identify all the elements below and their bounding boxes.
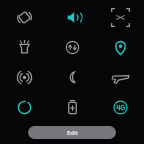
- button[interactable]: WLAN Hotspot: [0, 63, 48, 93]
- button[interactable]: Auto-rotate: [0, 3, 48, 33]
- button[interactable]: Edit: [28, 126, 116, 139]
- button[interactable]: Airplane mode: [96, 63, 144, 93]
- button[interactable]: GPS: [96, 33, 144, 63]
- button[interactable]: Flashlight: [0, 33, 48, 63]
- button[interactable]: Sound: [48, 3, 96, 33]
- button[interactable]: Screenshot: [96, 3, 144, 33]
- button[interactable]: 4G: [96, 93, 144, 123]
- staticText: Edit: [67, 129, 78, 137]
- button[interactable]: Auto-sync: [0, 93, 48, 123]
- button[interactable]: No disturb: [48, 63, 96, 93]
- button[interactable]: Mobile data: [48, 33, 96, 63]
- button[interactable]: Ultra battery: [48, 93, 96, 123]
